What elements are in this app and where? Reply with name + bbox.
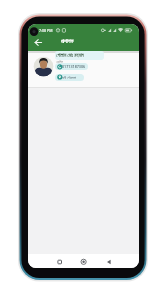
button[interactable]: ফেনী পৌরসভা [55,74,84,81]
staticText: গোলাম মোঃ রহমান [56,52,84,59]
staticText: 7:08 PM [39,28,53,33]
staticText: ফেনী পৌরসভা [61,75,77,80]
button[interactable] [101,255,117,267]
button[interactable] [32,37,45,48]
button[interactable]: 01713187306 [55,63,88,70]
button[interactable] [34,57,54,77]
staticText: প্রশাসক [61,39,74,45]
button[interactable]: প্রশাসক [61,37,87,46]
button[interactable] [52,255,68,267]
staticText: এডমিন [56,60,63,63]
button[interactable] [76,255,92,267]
staticText: 01713187306 [62,64,86,69]
button[interactable]: গোলাম মোঃ রহমান [55,51,104,60]
